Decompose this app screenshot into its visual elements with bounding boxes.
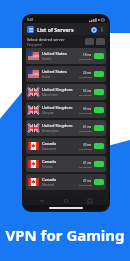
staticText: Connected xyxy=(79,165,92,168)
button[interactable]: Connect to Canada Vancouver xyxy=(94,143,104,149)
button[interactable]: Connect to United Kingdom Glasgow xyxy=(94,107,104,113)
staticText: Seattle xyxy=(42,57,52,61)
button[interactable]: United Kingdom xyxy=(26,102,106,118)
button[interactable]: Refresh xyxy=(90,26,97,33)
staticText: 18 ms xyxy=(83,53,92,57)
staticText: Canada xyxy=(42,159,56,164)
button[interactable]: Filter xyxy=(96,38,105,45)
staticText: Manchester xyxy=(42,93,59,97)
staticText: Connected xyxy=(79,111,92,114)
staticText: 47 ms xyxy=(83,179,92,183)
staticText: Connected xyxy=(79,75,92,78)
staticText: Birmingham xyxy=(42,129,59,133)
staticText: Connected xyxy=(79,147,92,150)
button[interactable]: More options xyxy=(99,26,105,32)
staticText: Canada xyxy=(42,141,56,146)
staticText: United Kingdom xyxy=(42,123,73,128)
button[interactable]: United Kingdom xyxy=(26,120,106,136)
staticText: VPN for Gaming xyxy=(0,225,130,245)
button[interactable]: Connect to United States Dallas xyxy=(94,71,104,77)
button[interactable]: United States xyxy=(26,48,106,64)
staticText: 33 ms xyxy=(83,143,92,147)
staticText: Connected xyxy=(79,129,92,132)
button[interactable]: Recents xyxy=(84,197,96,205)
staticText: United States xyxy=(42,69,67,74)
staticText: 41 ms xyxy=(83,161,92,165)
staticText: Connected xyxy=(79,93,92,96)
staticText: List of Servers xyxy=(37,26,74,33)
button[interactable]: Connect to United States Seattle xyxy=(94,53,104,59)
staticText: United Kingdom xyxy=(42,87,73,92)
button[interactable]: Back xyxy=(36,197,48,205)
button[interactable]: United Kingdom xyxy=(26,84,106,100)
staticText: Connected xyxy=(79,183,92,186)
button[interactable]: Canada xyxy=(26,156,106,172)
button[interactable]: United States xyxy=(26,66,106,82)
button[interactable]: Menu xyxy=(27,26,34,33)
staticText: Ping speed xyxy=(27,43,42,47)
staticText: 52 ms xyxy=(83,89,92,93)
button[interactable]: Connect to Canada Montreal xyxy=(94,179,104,185)
button[interactable]: Sort xyxy=(85,38,94,45)
staticText: United Kingdom xyxy=(42,105,73,110)
button[interactable]: Canada xyxy=(26,138,106,154)
button[interactable]: Home xyxy=(60,197,72,205)
staticText: Connected xyxy=(79,57,92,60)
staticText: United States xyxy=(42,51,67,56)
staticText: 61 ms xyxy=(83,125,92,129)
staticText: Montreal xyxy=(42,183,55,187)
staticText: Select desired server xyxy=(27,37,65,42)
button[interactable]: Connect to Canada Toronto xyxy=(94,161,104,167)
button[interactable]: Connect to United Kingdom Birmingham xyxy=(94,125,104,131)
staticText: Toronto xyxy=(42,165,53,169)
button[interactable]: Canada xyxy=(26,174,106,190)
staticText: Dallas xyxy=(42,75,51,79)
staticText: Glasgow xyxy=(42,111,54,115)
staticText: Canada xyxy=(42,177,56,182)
staticText: 24 ms xyxy=(83,71,92,75)
button[interactable]: Connect to United Kingdom Manchester xyxy=(94,89,104,95)
staticText: 9:41 xyxy=(27,18,34,22)
staticText: 56 ms xyxy=(83,107,92,111)
staticText: Vancouver xyxy=(42,147,57,151)
